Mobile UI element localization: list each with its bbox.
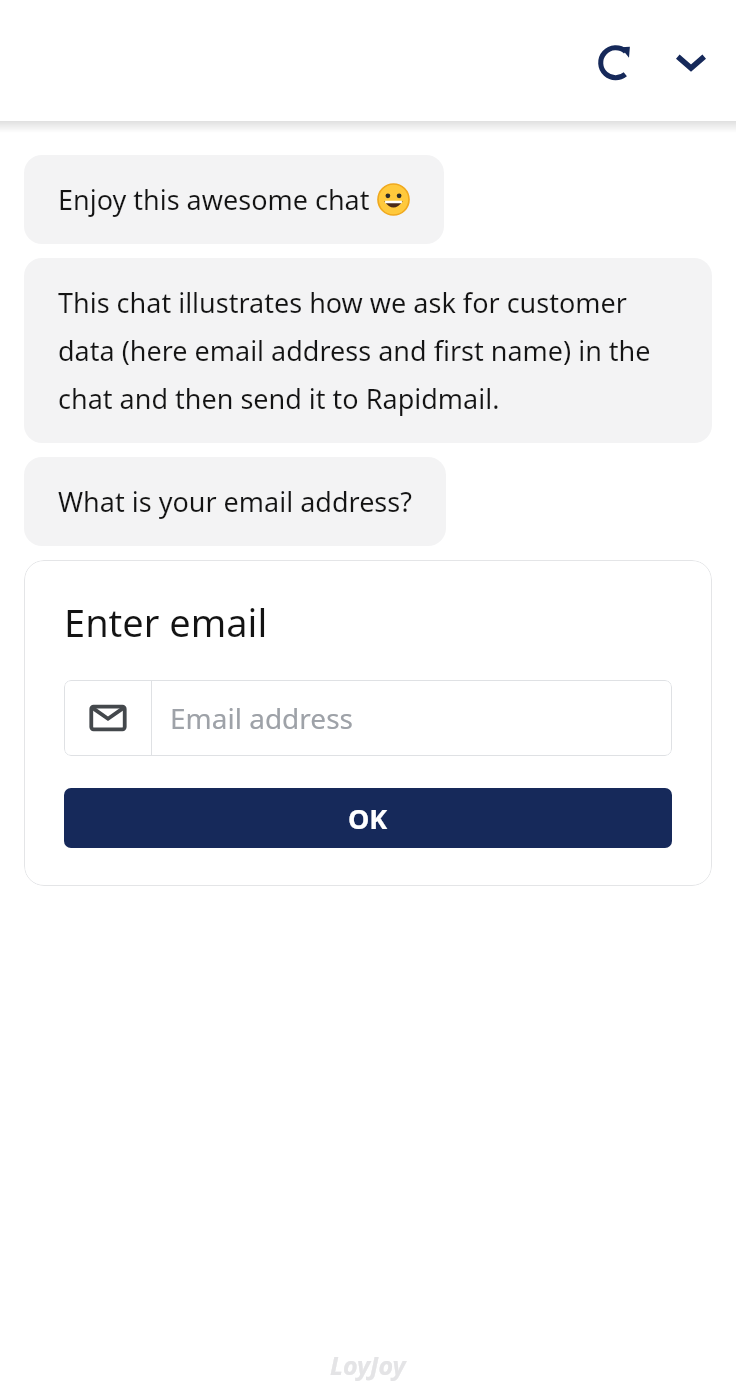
button[interactable]: This chat illustrates how we ask for cus… xyxy=(24,258,712,443)
staticText: LoyJoy xyxy=(330,1348,406,1382)
staticText: Enter email xyxy=(64,596,268,648)
button[interactable]: Enjoy this awesome chat xyxy=(24,155,444,244)
staticText: This chat illustrates how we ask for cus… xyxy=(58,284,678,417)
staticText: What is your email address? xyxy=(58,483,412,520)
button[interactable]: Restart chat xyxy=(580,24,654,98)
staticText: OK xyxy=(348,800,388,837)
button[interactable]: What is your email address? xyxy=(24,457,446,546)
staticText: Email address xyxy=(170,699,353,737)
button[interactable]: OK xyxy=(64,788,672,848)
staticText: Enjoy this awesome chat xyxy=(58,181,377,218)
button[interactable]: Minimize chat xyxy=(654,24,728,98)
button[interactable]: Email address xyxy=(64,680,672,756)
